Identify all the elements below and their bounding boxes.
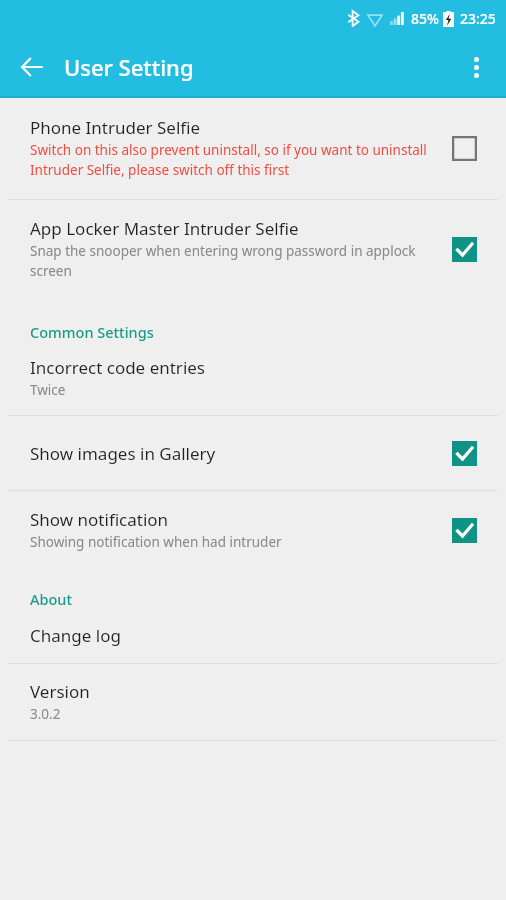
button[interactable]: App Locker Master Intruder Selfie [444,229,484,269]
button[interactable]: Phone Intruder Selfie [444,128,484,168]
button[interactable]: More options [452,43,500,91]
staticText: Switch on this also prevent uninstall, s… [30,141,428,179]
staticText: User Setting [64,52,194,82]
staticText: Phone Intruder Selfie [30,116,201,139]
staticText: 23:25 [460,9,496,28]
staticText: Showing notification when had intruder [30,533,282,551]
button[interactable]: Version [0,664,506,740]
staticText: App Locker Master Intruder Selfie [30,217,299,240]
button[interactable]: Phone Intruder Selfie [0,98,506,199]
staticText: Incorrect code entries [30,356,205,379]
staticText: Version [30,680,90,703]
staticText: Common Settings [30,322,484,342]
button[interactable]: Show notification [0,491,506,569]
button[interactable]: App Locker Master Intruder Selfie [0,200,506,300]
staticText: Show notification [30,508,169,531]
staticText: About [30,589,484,609]
staticText: 3.0.2 [30,705,61,723]
button[interactable]: Incorrect code entries [0,344,506,415]
staticText: Twice [30,381,66,399]
button[interactable]: Back [8,43,56,91]
button[interactable]: Show notification [444,510,484,550]
button[interactable]: Show images in Gallery [0,416,506,490]
staticText: 85% [411,9,439,28]
staticText: Change log [30,624,121,647]
button[interactable]: Change log [0,611,506,663]
staticText: Snap the snooper when entering wrong pas… [30,242,428,280]
button[interactable]: Show images in Gallery [444,433,484,473]
staticText: Show images in Gallery [30,442,216,465]
